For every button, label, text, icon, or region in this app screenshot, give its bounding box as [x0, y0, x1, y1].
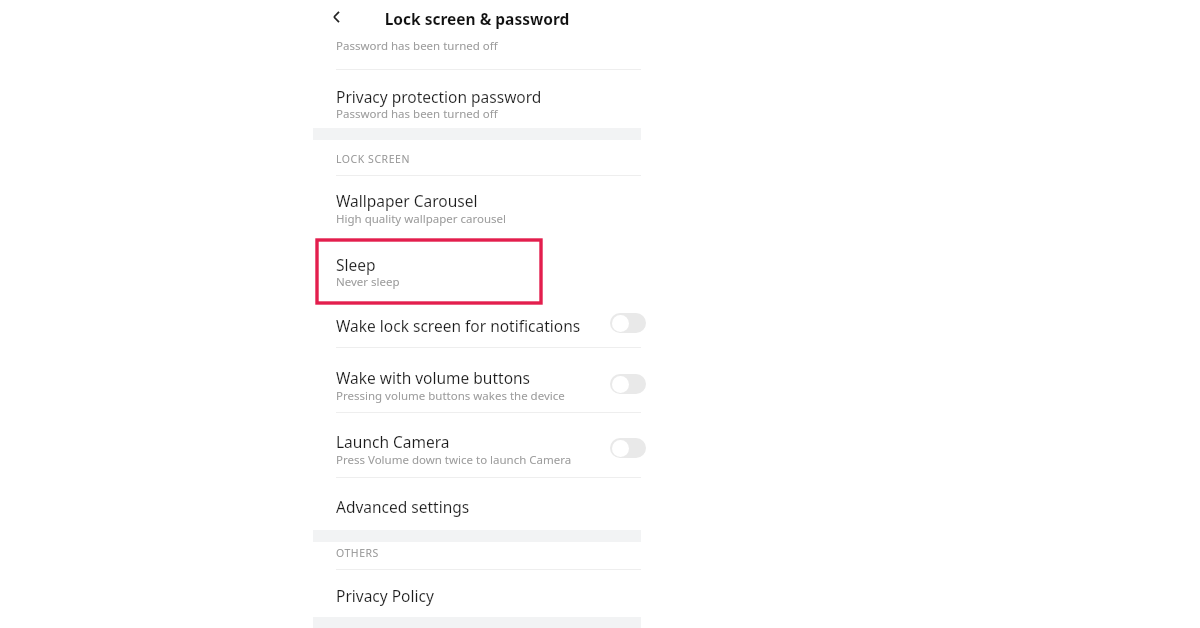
- staticText: Wake with volume buttons: [336, 367, 531, 388]
- staticText: Password has been turned off: [336, 106, 498, 122]
- button[interactable]: Privacy protection password: [313, 70, 641, 128]
- staticText: Lock screen & password: [313, 8, 641, 29]
- staticText: Launch Camera: [336, 431, 450, 452]
- staticText: Privacy protection password: [336, 86, 542, 107]
- button[interactable]: Launch Camera: [313, 413, 641, 477]
- staticText: Never sleep: [336, 274, 400, 290]
- button[interactable]: Advanced settings: [313, 478, 641, 530]
- staticText: Wallpaper Carousel: [336, 190, 478, 211]
- staticText: LOCK SCREEN: [336, 152, 410, 166]
- button[interactable]: Sleep: [313, 240, 641, 303]
- button[interactable]: Privacy Policy: [313, 570, 641, 617]
- staticText: Privacy Policy: [336, 585, 434, 606]
- button[interactable]: Launch Camera, off: [610, 438, 646, 458]
- button[interactable]: Wake with volume buttons: [313, 348, 641, 412]
- staticText: Wake lock screen for notifications: [336, 315, 581, 336]
- staticText: Password has been turned off: [336, 38, 498, 54]
- staticText: OTHERS: [336, 546, 379, 560]
- staticText: Press Volume down twice to launch Camera: [336, 452, 572, 468]
- staticText: Sleep: [336, 254, 376, 275]
- button[interactable]: Wallpaper Carousel: [313, 176, 641, 240]
- button[interactable]: Wake lock screen for notifications, off: [610, 313, 646, 333]
- staticText: Pressing volume buttons wakes the device: [336, 388, 565, 404]
- staticText: Advanced settings: [336, 496, 470, 517]
- button[interactable]: Wake lock screen for notifications: [313, 304, 641, 347]
- staticText: High quality wallpaper carousel: [336, 211, 506, 227]
- button[interactable]: Back: [322, 2, 352, 32]
- button[interactable]: Wake with volume buttons, off: [610, 374, 646, 394]
